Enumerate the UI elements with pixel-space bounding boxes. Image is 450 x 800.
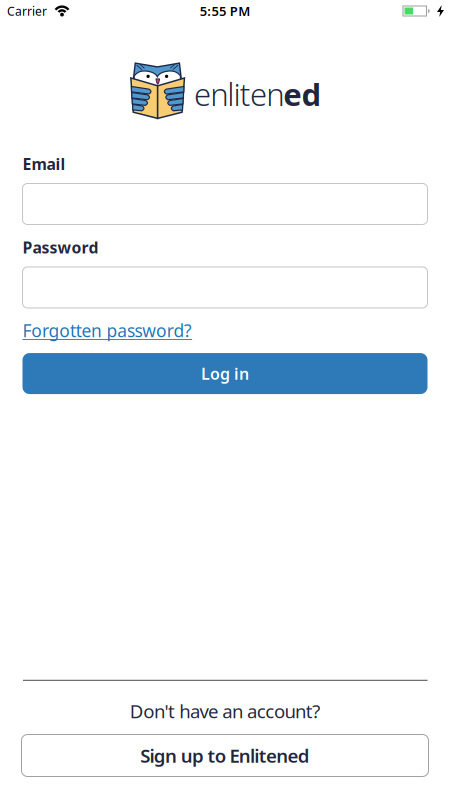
staticText: Sign up to Enlitened <box>140 743 310 768</box>
staticText: Password <box>22 237 98 258</box>
button[interactable]: Sign up to Enlitened <box>21 734 428 776</box>
button[interactable]: Email <box>22 183 427 224</box>
button[interactable]: Forgotten password? <box>22 319 192 342</box>
staticText: 5:55 PM <box>200 2 250 20</box>
button[interactable]: Password <box>22 267 427 308</box>
staticText: Log in <box>201 363 249 384</box>
staticText: Forgotten password? <box>22 319 192 342</box>
staticText: Don't have an account? <box>130 699 320 723</box>
staticText: Email <box>22 153 65 174</box>
staticText: Carrier <box>7 3 47 19</box>
button[interactable]: Log in <box>22 353 427 394</box>
staticText: enlitened <box>194 73 321 115</box>
